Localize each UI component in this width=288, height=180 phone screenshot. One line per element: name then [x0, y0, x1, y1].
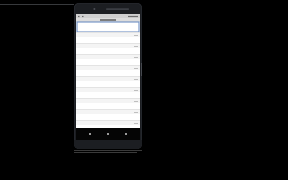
button[interactable]: Recents [122, 130, 130, 138]
button[interactable] [76, 43, 140, 54]
button[interactable] [76, 98, 140, 109]
button[interactable] [76, 120, 140, 128]
button[interactable] [76, 87, 140, 98]
button[interactable]: Back [86, 130, 94, 138]
button[interactable]: Home [104, 130, 112, 138]
button[interactable] [76, 65, 140, 76]
button[interactable] [76, 32, 140, 43]
button[interactable] [76, 109, 140, 120]
button[interactable] [76, 54, 140, 65]
button[interactable] [76, 18, 140, 22]
button[interactable] [77, 22, 139, 32]
button[interactable] [76, 76, 140, 87]
